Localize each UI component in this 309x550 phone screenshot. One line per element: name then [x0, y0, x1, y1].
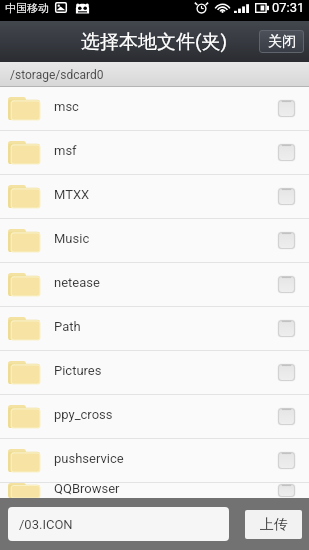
button[interactable]: Select msc — [277, 99, 296, 118]
staticText: msc — [54, 99, 79, 114]
staticText: pushservice — [54, 451, 124, 466]
button[interactable]: Select msf — [277, 143, 296, 162]
staticText: Pictures — [54, 363, 102, 378]
button[interactable]: Select netease — [277, 275, 296, 294]
staticText: /storage/sdcard0 — [10, 68, 104, 82]
button[interactable]: Music — [0, 219, 309, 262]
button[interactable]: Select ppy_cross — [277, 407, 296, 426]
button[interactable]: Select pushservice — [277, 451, 296, 470]
button[interactable]: 关闭 — [259, 30, 304, 53]
staticText: QQBrowser — [54, 481, 120, 496]
staticText: 选择本地文件(夹) — [81, 30, 228, 54]
staticText: ppy_cross — [54, 407, 113, 422]
button[interactable]: msf — [0, 131, 309, 174]
button[interactable]: pushservice — [0, 439, 309, 482]
staticText: 中国移动 — [5, 1, 49, 15]
staticText: netease — [54, 275, 100, 290]
staticText: 07:31 — [272, 0, 305, 15]
button[interactable]: Pictures — [0, 351, 309, 394]
button[interactable]: 上传 — [245, 510, 302, 539]
staticText: MTXX — [54, 187, 90, 202]
button[interactable]: Select MTXX — [277, 187, 296, 206]
button[interactable]: QQBrowser — [0, 483, 309, 498]
button[interactable]: MTXX — [0, 175, 309, 218]
button[interactable]: /03.ICON — [8, 507, 229, 541]
button[interactable]: Select Pictures — [277, 363, 296, 382]
staticText: 上传 — [260, 516, 288, 534]
staticText: msf — [54, 143, 77, 158]
staticText: Music — [54, 231, 90, 246]
button[interactable]: ppy_cross — [0, 395, 309, 438]
staticText: 关闭 — [268, 33, 296, 51]
button[interactable]: Select Path — [277, 319, 296, 338]
button[interactable]: netease — [0, 263, 309, 306]
button[interactable]: Select Music — [277, 231, 296, 250]
button[interactable]: Select QQBrowser — [277, 483, 296, 498]
button[interactable]: msc — [0, 87, 309, 130]
button[interactable]: Path — [0, 307, 309, 350]
staticText: Path — [54, 319, 81, 334]
staticText: /03.ICON — [19, 517, 73, 532]
